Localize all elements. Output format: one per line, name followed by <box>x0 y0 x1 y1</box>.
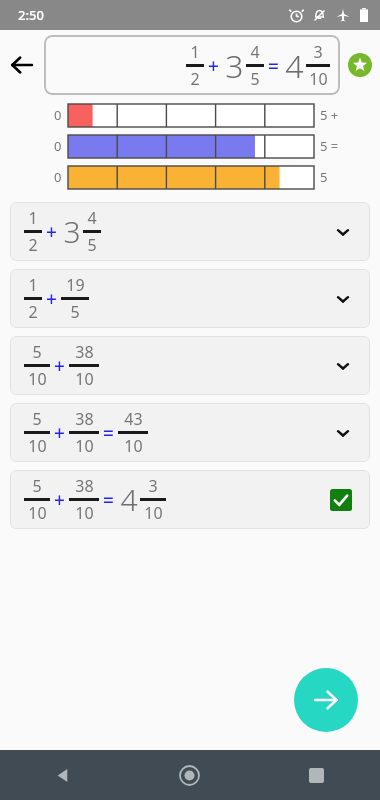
button[interactable]: Next <box>294 668 358 732</box>
staticText: 38 <box>75 475 94 497</box>
button[interactable]: Home <box>126 750 253 800</box>
button[interactable]: Back <box>0 43 44 87</box>
staticText: 3 <box>148 475 158 497</box>
staticText: 2 <box>190 68 200 90</box>
staticText: 3 <box>313 41 323 63</box>
button[interactable]: 5 <box>10 336 370 395</box>
button[interactable]: 5 <box>10 470 370 529</box>
staticText: = <box>103 487 114 513</box>
staticText: 10 <box>28 368 47 390</box>
staticText: 1 <box>28 207 38 229</box>
staticText: + <box>54 420 65 446</box>
staticText: = <box>103 420 114 446</box>
staticText: 0 <box>54 168 62 186</box>
staticText: 10 <box>144 502 163 524</box>
staticText: 5 <box>320 168 328 186</box>
staticText: 1 <box>190 41 200 63</box>
button[interactable]: Recent apps <box>253 750 380 800</box>
staticText: 19 <box>66 274 85 296</box>
staticText: 5 + <box>320 106 339 124</box>
staticText: 3 <box>63 211 81 252</box>
staticText: 2 <box>28 301 38 323</box>
button[interactable]: Back <box>0 750 126 800</box>
staticText: 5 <box>70 301 80 323</box>
staticText: + <box>46 286 57 312</box>
button[interactable]: Favorite <box>340 45 380 85</box>
staticText: 38 <box>75 341 94 363</box>
staticText: 10 <box>75 368 94 390</box>
staticText: 10 <box>28 502 47 524</box>
staticText: 5 <box>250 68 260 90</box>
button[interactable]: 1 <box>44 35 340 95</box>
button[interactable]: 1 <box>10 269 370 328</box>
staticText: 10 <box>75 435 94 457</box>
staticText: 5 <box>32 341 42 363</box>
staticText: = <box>268 53 279 79</box>
staticText: + <box>208 53 219 79</box>
staticText: 1 <box>28 274 38 296</box>
staticText: 43 <box>124 408 143 430</box>
staticText: 4 <box>285 44 304 88</box>
staticText: 0 <box>54 137 62 155</box>
staticText: 4 <box>87 207 97 229</box>
button[interactable]: 5 <box>10 403 370 462</box>
staticText: 5 = <box>320 137 339 155</box>
staticText: + <box>46 219 57 245</box>
staticText: 2:50 <box>18 6 44 24</box>
staticText: + <box>54 487 65 513</box>
staticText: 5 <box>32 475 42 497</box>
staticText: 10 <box>75 502 94 524</box>
staticText: + <box>54 353 65 379</box>
staticText: 4 <box>120 479 138 520</box>
button[interactable]: 1 <box>10 202 370 261</box>
staticText: 10 <box>309 68 328 90</box>
staticText: 3 <box>225 44 244 88</box>
staticText: 10 <box>124 435 143 457</box>
staticText: 2 <box>28 234 38 256</box>
staticText: 4 <box>250 41 260 63</box>
staticText: 38 <box>75 408 94 430</box>
staticText: 5 <box>32 408 42 430</box>
staticText: 10 <box>28 435 47 457</box>
staticText: 0 <box>54 106 62 124</box>
staticText: 5 <box>87 234 97 256</box>
